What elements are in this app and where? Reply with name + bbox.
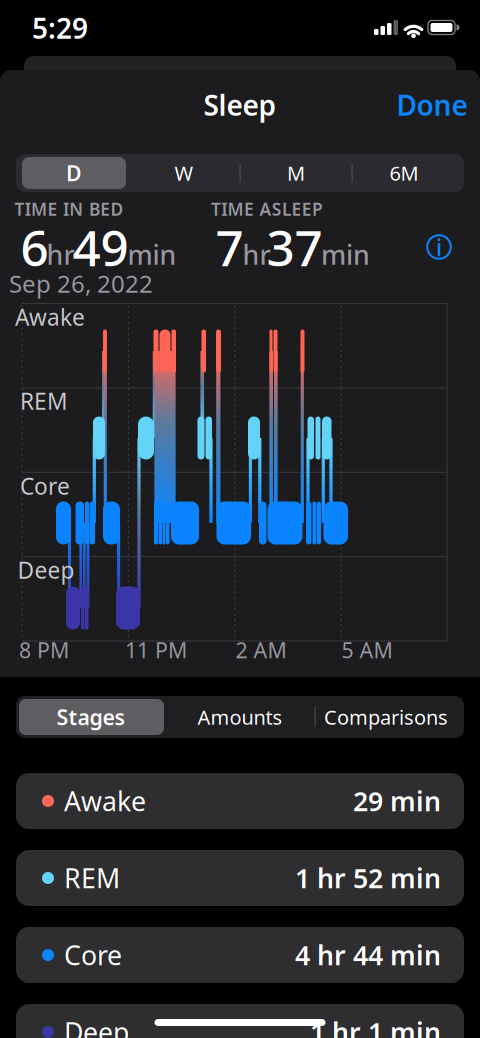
button[interactable]: i <box>426 234 452 260</box>
staticText: W <box>174 160 193 186</box>
staticText: 5 AM <box>341 636 392 664</box>
staticText: 1 hr 1 min <box>310 1014 441 1038</box>
staticText: TIME ASLEEP <box>211 197 323 220</box>
staticText: 6 <box>20 214 48 280</box>
staticText: Core <box>64 937 122 973</box>
staticText: 5:29 <box>32 9 88 47</box>
button[interactable]: Deep <box>16 1004 464 1038</box>
staticText: 49 <box>72 214 128 280</box>
staticText: REM <box>64 860 120 896</box>
staticText: Comparisons <box>324 704 448 730</box>
staticText: Awake <box>64 783 146 819</box>
staticText: Sep 26, 2022 <box>9 268 153 299</box>
staticText: hr <box>46 237 74 272</box>
staticText: Deep <box>17 555 74 585</box>
button[interactable]: M <box>241 154 351 192</box>
staticText: Awake <box>15 302 85 332</box>
staticText: 6M <box>389 160 418 186</box>
button[interactable]: Comparisons <box>312 696 459 738</box>
staticText: D <box>66 159 82 187</box>
staticText: 2 AM <box>235 636 286 664</box>
staticText: 1 hr 52 min <box>295 860 441 896</box>
staticText: Deep <box>64 1014 129 1038</box>
staticText: Done <box>396 86 467 124</box>
staticText: Amounts <box>197 704 282 730</box>
button[interactable]: Stages <box>17 696 164 738</box>
staticText: 7 <box>215 214 243 280</box>
staticText: hr <box>242 237 270 272</box>
button[interactable]: 6M <box>349 154 459 192</box>
staticText: Core <box>20 471 70 501</box>
staticText: 8 PM <box>19 636 69 664</box>
staticText: Stages <box>56 703 125 731</box>
staticText: 29 min <box>353 783 441 819</box>
staticText: 37 <box>266 214 322 280</box>
staticText: min <box>321 237 370 272</box>
button[interactable]: Amounts <box>166 696 313 738</box>
staticText: 4 hr 44 min <box>295 937 441 973</box>
button[interactable]: W <box>129 154 239 192</box>
staticText: REM <box>20 386 68 416</box>
staticText: M <box>287 160 305 186</box>
button[interactable]: REM <box>16 850 464 906</box>
button[interactable]: Awake <box>16 773 464 829</box>
button[interactable]: D <box>19 154 129 192</box>
staticText: 11 PM <box>125 636 187 664</box>
button[interactable]: Done <box>396 86 467 124</box>
staticText: i <box>436 232 442 262</box>
staticText: min <box>127 237 176 272</box>
button[interactable]: Core <box>16 927 464 983</box>
staticText: Sleep <box>203 86 276 124</box>
staticText: TIME IN BED <box>14 197 123 220</box>
